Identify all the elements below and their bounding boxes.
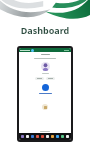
button[interactable] [51,135,54,138]
button[interactable] [35,77,44,80]
button[interactable] [46,77,55,80]
staticText: Dashboard [0,24,90,36]
button[interactable] [66,135,69,138]
button[interactable]: Scan [42,84,49,91]
button[interactable] [56,135,59,138]
button[interactable] [31,135,34,138]
button[interactable] [41,135,44,138]
button[interactable] [61,135,64,138]
button[interactable] [26,135,29,138]
button[interactable] [46,135,49,138]
button[interactable] [21,135,24,138]
button[interactable] [36,135,39,138]
